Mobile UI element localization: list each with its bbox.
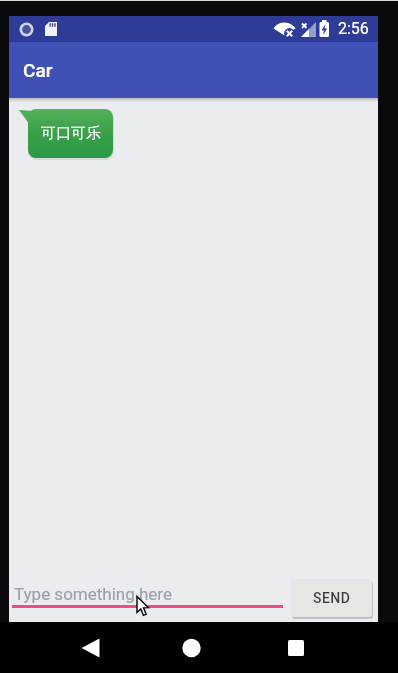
staticText: 2:56 (338, 19, 369, 38)
staticText: SEND (313, 590, 351, 606)
button[interactable] (74, 632, 106, 664)
button[interactable]: Type something here (12, 578, 283, 610)
staticText: 可口可乐 (41, 124, 101, 143)
staticText: Type something here (14, 584, 172, 604)
button[interactable]: 可口可乐 (28, 109, 113, 158)
button[interactable] (280, 632, 312, 664)
button[interactable] (175, 632, 207, 664)
button[interactable]: SEND (291, 579, 372, 617)
staticText: Car (23, 59, 53, 81)
